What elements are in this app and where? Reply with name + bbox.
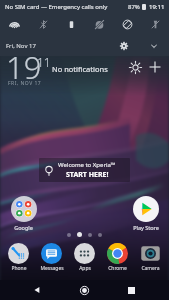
staticText: Welcome to Xperia™ (58, 161, 116, 169)
button[interactable]: Messages (35, 243, 68, 272)
staticText: Phone (11, 265, 27, 272)
button[interactable]: Wi-Fi (0, 13, 29, 35)
staticText: FRI, NOV 17 (8, 80, 42, 87)
button[interactable]: Auto-rotate (113, 13, 141, 35)
button[interactable]: Google (7, 196, 40, 231)
staticText: 87% (128, 3, 140, 11)
button[interactable]: Brightness (126, 58, 144, 76)
staticText: No SIM card — Emergency calls only (5, 3, 108, 11)
button[interactable]: Welcome to Xperia™ (39, 158, 130, 182)
staticText: Chrome (108, 265, 127, 272)
button[interactable]: Phone (2, 243, 35, 272)
staticText: Apps (79, 265, 91, 272)
button[interactable]: Chrome (101, 243, 134, 272)
button[interactable]: Expand (145, 37, 163, 55)
staticText: 19 (6, 46, 42, 82)
button[interactable]: Battery (57, 13, 85, 35)
staticText: Google (14, 224, 33, 231)
staticText: 19:11 (149, 3, 165, 11)
staticText: Fri, Nov 17 (6, 42, 36, 50)
button[interactable]: Settings (115, 37, 133, 55)
button[interactable]: Camera (134, 243, 167, 272)
button[interactable]: Home (72, 280, 97, 300)
button[interactable]: Back (24, 280, 49, 300)
staticText: 11 (37, 54, 51, 70)
button[interactable]: Play Store (129, 196, 162, 231)
staticText: Messages (40, 265, 64, 272)
button[interactable]: Add tile (146, 58, 164, 76)
button[interactable]: Recent apps (119, 280, 144, 300)
button[interactable]: Bluetooth (29, 13, 57, 35)
staticText: Camera (141, 265, 160, 272)
staticText: START HERE! (66, 170, 109, 180)
button[interactable]: Flashlight (141, 13, 169, 35)
button[interactable]: Do not disturb (85, 13, 113, 35)
button[interactable]: Apps (68, 243, 101, 272)
staticText: No notifications (52, 64, 108, 74)
staticText: Play Store (133, 224, 159, 231)
